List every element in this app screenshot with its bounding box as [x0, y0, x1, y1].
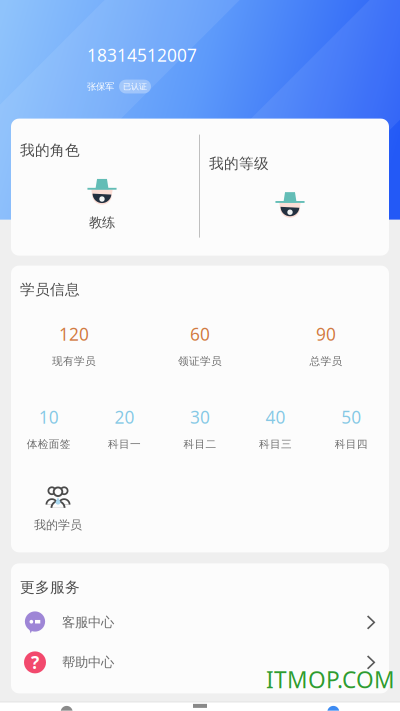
staticText: 科目二: [183, 438, 216, 451]
staticText: 体检面签: [27, 438, 71, 451]
staticText: 90: [316, 323, 336, 346]
staticText: 科目四: [335, 438, 368, 451]
staticText: 18314512007: [87, 44, 197, 67]
staticText: 现有学员: [52, 355, 96, 368]
staticText: ITMOP.COM: [266, 664, 395, 695]
staticText: 客服中心: [62, 614, 114, 631]
button[interactable]: 客服中心: [11, 602, 389, 642]
staticText: ?: [31, 651, 39, 674]
staticText: 20: [114, 406, 134, 429]
staticText: 30: [190, 406, 210, 429]
staticText: 我的等级: [209, 155, 269, 173]
button[interactable]: ?: [11, 642, 389, 682]
button[interactable]: 订单: [133, 701, 267, 711]
staticText: 120: [59, 323, 89, 346]
staticText: 更多服务: [20, 578, 80, 596]
staticText: 已认证: [123, 82, 147, 91]
staticText: 张保军: [87, 81, 114, 92]
staticText: 10: [39, 406, 59, 429]
staticText: 学员信息: [20, 281, 80, 299]
staticText: 总学员: [309, 355, 342, 368]
staticText: 我的角色: [20, 141, 80, 159]
staticText: 帮助中心: [62, 654, 114, 671]
staticText: 50: [341, 406, 361, 429]
staticText: 科目一: [108, 438, 141, 451]
staticText: 科目三: [259, 438, 292, 451]
button[interactable]: 我的学员: [11, 485, 105, 532]
staticText: 40: [266, 406, 286, 429]
staticText: 教练: [89, 214, 115, 231]
staticText: 我的学员: [34, 518, 82, 532]
staticText: 领证学员: [178, 355, 222, 368]
button[interactable]: 首页: [0, 701, 133, 711]
button[interactable]: 我的: [267, 701, 400, 711]
staticText: 60: [190, 323, 210, 346]
